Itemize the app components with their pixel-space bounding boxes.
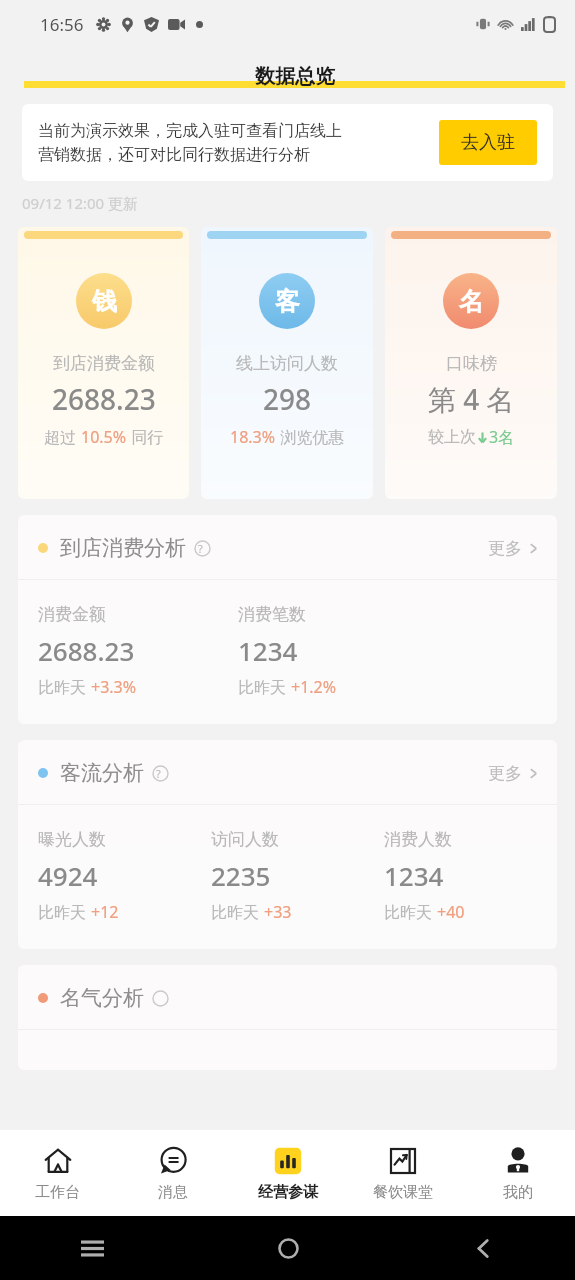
staticText: 消费笔数 xyxy=(238,604,306,625)
button[interactable]: Back xyxy=(461,1226,505,1270)
button[interactable]: 客流分析 xyxy=(18,740,557,804)
staticText: 比昨天 xyxy=(38,901,91,923)
staticText: 名气分析 xyxy=(60,985,144,1011)
button[interactable]: 去入驻 xyxy=(439,120,537,165)
staticText: +1.2% xyxy=(291,676,337,698)
other: 消息 xyxy=(158,1146,188,1176)
staticText: 2688.23 xyxy=(38,633,135,668)
staticText: 到店消费分析 xyxy=(60,535,186,561)
staticText: 比昨天 xyxy=(384,901,437,923)
staticText: 餐饮课堂 xyxy=(373,1183,433,1202)
staticText: 曝光人数 xyxy=(38,829,106,850)
button[interactable]: Recents xyxy=(70,1226,114,1270)
button[interactable]: 数据总览 xyxy=(14,64,575,89)
button[interactable]: 客 xyxy=(201,227,373,499)
other: 我的 xyxy=(503,1146,533,1176)
staticText: 更多 xyxy=(488,763,522,784)
staticText: 名 xyxy=(459,286,484,317)
staticText: 更多 xyxy=(488,538,522,559)
staticText: 消息 xyxy=(158,1183,188,1202)
staticText: 比昨天 xyxy=(38,676,91,698)
staticText: 09/12 12:00 更新 xyxy=(22,193,139,213)
other: 经营参谋 xyxy=(273,1146,303,1176)
button[interactable]: 我的 xyxy=(460,1130,575,1216)
staticText: 10.5% xyxy=(81,426,127,448)
staticText: 较上次 xyxy=(428,427,476,447)
button[interactable]: 经营参谋 xyxy=(230,1130,345,1216)
button[interactable]: Home xyxy=(266,1226,310,1270)
staticText: 浏览优惠 xyxy=(276,426,345,448)
staticText: 钱 xyxy=(92,286,117,317)
staticText: 我的 xyxy=(503,1183,533,1202)
staticText: 客流分析 xyxy=(60,760,144,786)
other: 帮助 xyxy=(194,540,211,557)
button[interactable]: 名气分析 xyxy=(18,965,557,1029)
staticText: 口味榜 xyxy=(446,353,497,374)
staticText: 1234 xyxy=(238,633,298,668)
button[interactable]: 更多 xyxy=(488,538,539,559)
button[interactable]: 到店消费分析 xyxy=(18,515,557,579)
staticText: 线上访问人数 xyxy=(236,353,338,374)
staticText: 超过 xyxy=(44,426,81,448)
button[interactable]: 工作台 xyxy=(0,1130,115,1216)
staticText: 当前为演示效果，完成入驻可查看门店线上 xyxy=(38,121,342,141)
staticText: 消费金额 xyxy=(38,604,106,625)
staticText: ? xyxy=(198,541,203,556)
staticText: 3名 xyxy=(489,426,515,448)
staticText: ? xyxy=(156,766,161,781)
staticText: 工作台 xyxy=(35,1183,80,1202)
button[interactable]: 当前为演示效果，完成入驻可查看门店线上 xyxy=(22,104,553,181)
staticText: 去入驻 xyxy=(461,131,515,154)
staticText: 经营参谋 xyxy=(258,1183,318,1202)
staticText: 1234 xyxy=(384,858,444,893)
staticText: 消费人数 xyxy=(384,829,452,850)
staticText: 比昨天 xyxy=(238,676,291,698)
other: 工作台 xyxy=(43,1146,73,1176)
staticText: +3.3% xyxy=(91,676,137,698)
staticText: 到店消费金额 xyxy=(53,353,155,374)
staticText: 2688.23 xyxy=(52,380,156,418)
staticText: 比昨天 xyxy=(211,901,264,923)
other: 餐饮课堂 xyxy=(388,1146,418,1176)
staticText: +12 xyxy=(91,901,119,923)
staticText: 营销数据，还可对比同行数据进行分析 xyxy=(38,145,310,165)
staticText: 4924 xyxy=(38,858,98,893)
button[interactable]: 餐饮课堂 xyxy=(345,1130,460,1216)
staticText: 16:56 xyxy=(40,13,84,36)
staticText: 客 xyxy=(275,286,300,317)
staticText: +40 xyxy=(437,901,465,923)
staticText: 第 4 名 xyxy=(428,380,515,418)
button[interactable]: 更多 xyxy=(488,763,539,784)
button[interactable]: 钱 xyxy=(18,227,189,499)
staticText: 访问人数 xyxy=(211,829,279,850)
button[interactable]: 名 xyxy=(385,227,557,499)
staticText: 298 xyxy=(263,380,312,418)
other: 帮助 xyxy=(152,765,169,782)
staticText: 18.3% xyxy=(230,426,276,448)
staticText: 2235 xyxy=(211,858,271,893)
staticText: +33 xyxy=(264,901,292,923)
button[interactable]: 消息 xyxy=(115,1130,230,1216)
staticText: 数据总览 xyxy=(255,64,335,89)
other: 帮助 xyxy=(152,990,169,1007)
staticText: 同行 xyxy=(127,426,164,448)
